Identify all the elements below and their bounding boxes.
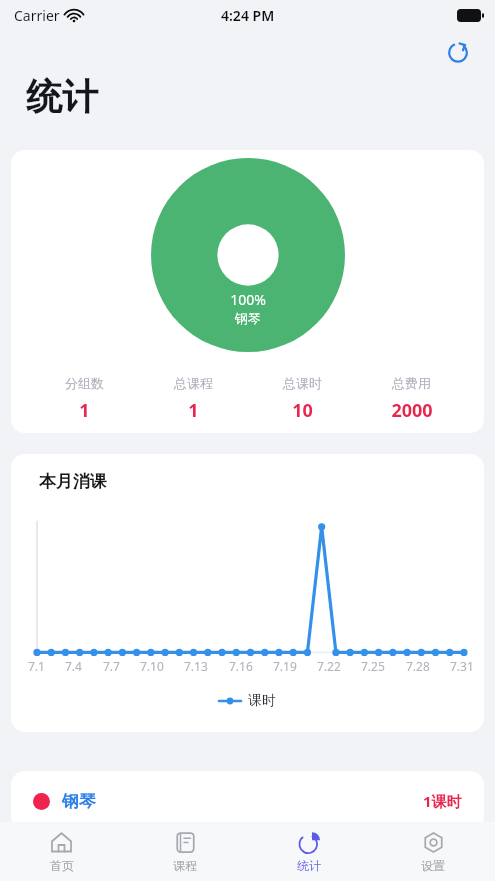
button[interactable]: 总课时 [248, 375, 357, 423]
staticText: 钢琴 [235, 310, 261, 326]
staticText: 7.31 [450, 658, 474, 674]
button[interactable]: 总费用 [357, 375, 466, 423]
staticText: 设置 [421, 858, 445, 873]
staticText: 课程 [173, 858, 197, 873]
staticText: 首页 [50, 858, 74, 873]
staticText: 7.13 [184, 658, 208, 674]
button[interactable]: 设置 [371, 822, 495, 881]
staticText: 总课时 [283, 375, 322, 391]
button[interactable]: 分组数 [29, 375, 139, 423]
staticText: 2000 [391, 398, 433, 423]
button[interactable]: 课程 [123, 822, 247, 881]
staticText: 7.19 [273, 658, 297, 674]
staticText: Carrier [14, 6, 60, 25]
staticText: 钢琴 [62, 791, 96, 812]
staticText: 1 [79, 398, 90, 423]
staticText: 分组数 [65, 375, 104, 391]
button[interactable]: 100% [11, 150, 484, 433]
staticText: 总课程 [174, 375, 213, 391]
staticText: 100% [230, 290, 266, 309]
staticText: 本月消课 [39, 471, 107, 492]
staticText: 总费用 [392, 375, 431, 391]
staticText: 7.10 [140, 658, 164, 674]
staticText: 7.1 [28, 658, 45, 674]
staticText: 1课时 [423, 791, 462, 811]
button[interactable]: 总课程 [139, 375, 248, 423]
button[interactable]: 首页 [0, 822, 123, 881]
staticText: 统计 [26, 74, 98, 119]
button[interactable]: 本月消课 [11, 454, 484, 732]
button[interactable]: Refresh [441, 35, 475, 69]
staticText: 7.22 [317, 658, 341, 674]
staticText: 7.25 [361, 658, 385, 674]
staticText: 统计 [297, 858, 321, 873]
staticText: 7.7 [103, 658, 120, 674]
staticText: 7.16 [229, 658, 253, 674]
staticText: 4:24 PM [221, 6, 275, 25]
staticText: 1 [188, 398, 199, 423]
button[interactable]: 统计 [247, 822, 371, 881]
staticText: 10 [292, 398, 313, 423]
button[interactable]: 钢琴 [11, 771, 484, 831]
staticText: 7.4 [65, 658, 82, 674]
staticText: 课时 [248, 692, 276, 710]
staticText: 7.28 [406, 658, 430, 674]
